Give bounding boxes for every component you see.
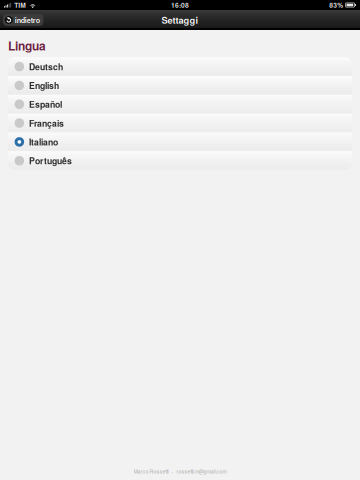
button[interactable]: indietro [3, 14, 43, 26]
button[interactable]: Italiano [8, 132, 352, 151]
button[interactable]: Deutsch [8, 57, 352, 76]
staticText: Português [29, 154, 72, 167]
staticText: TIM [14, 0, 26, 10]
button[interactable]: Português [8, 151, 352, 170]
button[interactable]: Français [8, 114, 352, 132]
staticText: 83% [329, 0, 343, 10]
staticText: Lingua [8, 37, 46, 54]
staticText: 16:08 [171, 0, 189, 10]
staticText: Deutsch [29, 60, 63, 73]
staticText: Español [29, 98, 62, 110]
staticText: Italiano [29, 136, 58, 148]
button[interactable]: Español [8, 95, 352, 114]
staticText: Marco Rossetti - rossetti.m@gmail.com [133, 467, 226, 475]
staticText: Settaggi [161, 13, 198, 27]
staticText: Français [29, 117, 64, 129]
button[interactable]: English [8, 76, 352, 95]
staticText: English [29, 79, 59, 92]
staticText: indietro [15, 15, 40, 25]
